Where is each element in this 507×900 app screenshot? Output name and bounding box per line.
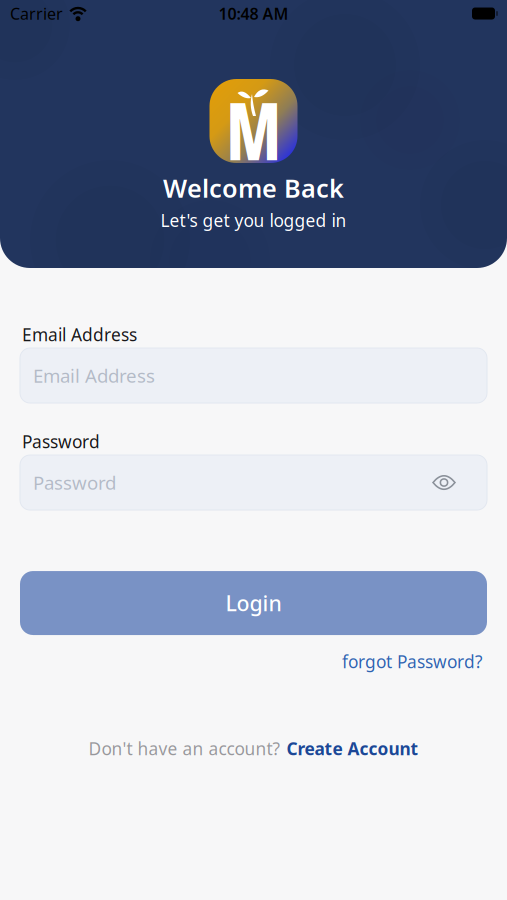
staticText: Let's get you logged in bbox=[160, 209, 346, 232]
staticText: 10:48 AM bbox=[218, 3, 288, 24]
staticText: Email Address bbox=[22, 323, 137, 346]
staticText: Password bbox=[22, 430, 100, 453]
button[interactable]: Login bbox=[20, 571, 487, 635]
staticText: Password bbox=[33, 470, 116, 495]
staticText: Don't have an account? bbox=[88, 737, 280, 760]
staticText: Welcome Back bbox=[163, 171, 344, 205]
staticText: Create Account bbox=[286, 737, 418, 760]
staticText: forgot Password? bbox=[342, 650, 483, 673]
staticText: Email Address bbox=[33, 363, 155, 388]
button[interactable]: Create Account bbox=[286, 737, 418, 760]
button[interactable]: forgot Password? bbox=[342, 650, 483, 673]
button[interactable]: Show password bbox=[433, 474, 455, 490]
staticText: Carrier bbox=[10, 3, 63, 24]
staticText: Login bbox=[225, 589, 281, 617]
staticText: M bbox=[226, 91, 281, 167]
